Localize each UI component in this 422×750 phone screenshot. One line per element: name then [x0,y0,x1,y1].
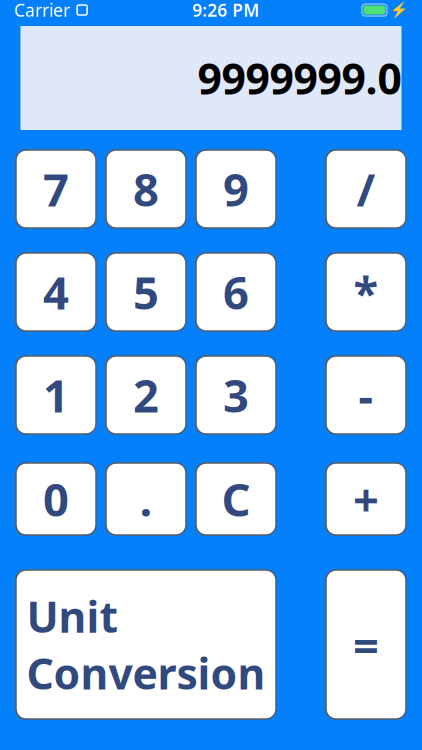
staticText: 6 [223,262,249,322]
staticText: 9:26 PM [192,0,259,21]
button[interactable]: / [326,150,406,228]
staticText: 9999999.0 [197,50,401,106]
button[interactable]: C [196,463,276,535]
staticText: / [356,159,375,219]
staticText: + [353,469,379,529]
staticText [387,1,390,19]
staticText: 3 [223,365,249,425]
staticText [70,0,75,21]
staticText: 9 [223,159,249,219]
button[interactable]: 9 [196,150,276,228]
staticText: 7 [43,159,69,219]
button[interactable]: 2 [106,356,186,434]
staticText: * [353,262,378,322]
button[interactable]: 3 [196,356,276,434]
staticText: = [353,614,379,675]
button[interactable]: - [326,356,406,434]
button[interactable]: 5 [106,253,186,331]
button[interactable]: 7 [16,150,96,228]
button[interactable]: . [106,463,186,535]
button[interactable]: * [326,253,406,331]
button[interactable]: 6 [196,253,276,331]
button[interactable]: = [326,570,406,719]
button[interactable]: 4 [16,253,96,331]
staticText: 5 [133,262,159,322]
staticText: Unit Conversion [26,588,265,701]
button[interactable]: 0 [16,463,96,535]
button[interactable]: 1 [16,356,96,434]
staticText: 0 [43,469,69,529]
staticText: ⚡ [390,2,408,18]
staticText: 8 [133,159,159,219]
button[interactable]: Unit Conversion [16,570,276,719]
staticText: 1 [43,365,69,425]
staticText: - [358,365,373,425]
button[interactable]: + [326,463,406,535]
staticText: C [221,469,250,529]
staticText: 2 [133,365,159,425]
staticText: Carrier [14,0,70,21]
button[interactable]: 8 [106,150,186,228]
staticText: 4 [43,262,69,322]
staticText: . [139,469,152,529]
